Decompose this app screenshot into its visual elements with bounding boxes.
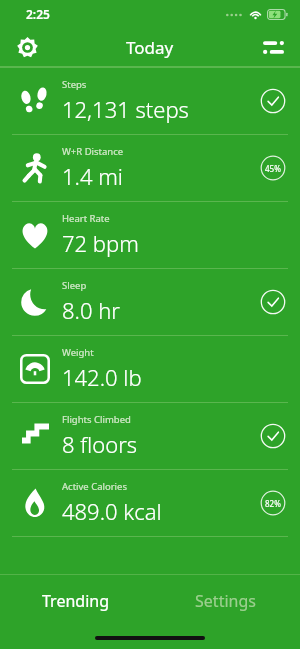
staticText: Trending bbox=[42, 590, 109, 612]
button[interactable]: Active Calories bbox=[0, 469, 300, 536]
staticText: Steps bbox=[62, 78, 87, 91]
staticText: 12,131 steps bbox=[62, 94, 189, 124]
staticText: Sleep bbox=[62, 279, 87, 292]
button[interactable]: Trending bbox=[0, 575, 150, 627]
staticText: Heart Rate bbox=[62, 212, 110, 225]
button[interactable]: Flights Climbed bbox=[0, 402, 300, 469]
staticText: W+R Distance bbox=[62, 145, 124, 158]
button[interactable]: Sleep bbox=[0, 268, 300, 335]
button[interactable]: Settings bbox=[150, 575, 300, 627]
staticText: Weight bbox=[62, 346, 94, 359]
staticText: 2:25 bbox=[26, 6, 50, 22]
staticText: Flights Climbed bbox=[62, 413, 131, 426]
staticText: Active Calories bbox=[62, 480, 127, 493]
staticText: Settings bbox=[195, 590, 256, 612]
staticText: 142.0 lb bbox=[62, 362, 142, 392]
staticText: 489.0 kcal bbox=[62, 496, 162, 526]
staticText: 82% bbox=[265, 498, 281, 509]
button[interactable]: Settings bbox=[8, 28, 46, 66]
button[interactable]: Filter bbox=[254, 28, 292, 66]
button[interactable]: Steps bbox=[0, 68, 300, 134]
button[interactable]: W+R Distance bbox=[0, 134, 300, 201]
staticText: 8.0 hr bbox=[62, 295, 120, 325]
button[interactable]: Heart Rate bbox=[0, 201, 300, 268]
staticText: 45% bbox=[265, 163, 281, 174]
staticText: Today bbox=[126, 36, 174, 59]
staticText: 1.4 mi bbox=[62, 161, 123, 191]
staticText: 8 floors bbox=[62, 429, 138, 459]
button[interactable]: Weight bbox=[0, 335, 300, 402]
staticText: 72 bpm bbox=[62, 228, 139, 258]
